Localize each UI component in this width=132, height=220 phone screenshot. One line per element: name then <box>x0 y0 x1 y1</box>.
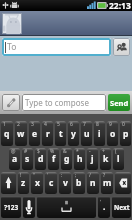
staticText: i <box>98 128 101 140</box>
button[interactable]: n <box>87 172 99 194</box>
button[interactable]: c <box>45 172 57 194</box>
staticText: 9 <box>109 121 112 128</box>
staticText: 5 <box>57 121 60 128</box>
staticText: 2 <box>17 121 20 128</box>
staticText: ' <box>47 172 49 179</box>
staticText: 22:13 <box>109 0 131 11</box>
staticText: + <box>102 148 105 155</box>
staticText: ( <box>115 148 117 155</box>
button[interactable]: d <box>35 148 46 170</box>
staticText: / <box>89 172 91 179</box>
staticText: x <box>35 177 40 189</box>
staticText: v <box>63 177 68 189</box>
button[interactable]: Contact photo <box>3 14 21 33</box>
staticText: 8 <box>96 121 99 128</box>
button[interactable]: w <box>15 121 27 146</box>
button[interactable]: v <box>59 172 71 194</box>
button[interactable]: t <box>55 121 66 146</box>
staticText: - <box>89 148 91 155</box>
staticText: t <box>59 128 63 140</box>
button[interactable]: a <box>9 148 20 170</box>
button[interactable] <box>23 196 35 218</box>
button[interactable]: h <box>74 148 85 170</box>
button[interactable]: b <box>73 172 85 194</box>
button[interactable]: j <box>87 148 98 170</box>
button[interactable]: e <box>29 121 40 146</box>
staticText: , <box>100 196 102 203</box>
button[interactable]: . <box>98 196 110 218</box>
button[interactable] <box>37 196 96 218</box>
staticText: y <box>71 128 76 140</box>
staticText: b <box>76 177 82 189</box>
staticText: . <box>103 201 106 213</box>
button[interactable]: k <box>100 148 111 170</box>
button[interactable]: y <box>68 121 79 146</box>
staticText: q <box>4 128 10 140</box>
button[interactable]: s <box>22 148 33 170</box>
staticText: d <box>38 153 44 165</box>
staticText: h <box>77 153 83 165</box>
staticText: & <box>63 148 67 155</box>
staticText: 1 <box>3 121 6 128</box>
button[interactable]: r <box>42 121 53 146</box>
staticText: k <box>103 153 109 165</box>
staticText: s <box>25 153 30 165</box>
button[interactable] <box>1 172 16 194</box>
button[interactable]: Next <box>112 196 131 218</box>
button[interactable]: z <box>18 172 29 194</box>
staticText: * <box>76 148 79 155</box>
staticText: " <box>33 172 36 179</box>
staticText: l <box>117 153 120 165</box>
staticText: To <box>7 41 17 53</box>
staticText: 3 <box>31 121 34 128</box>
staticText: a <box>12 153 18 165</box>
button[interactable]: Attach <box>2 94 20 111</box>
button[interactable]: l <box>113 148 124 170</box>
staticText: c <box>49 177 54 189</box>
staticText: $ <box>37 148 40 155</box>
staticText: ?123 <box>4 203 19 212</box>
button[interactable]: p <box>120 121 131 146</box>
button[interactable]: Send <box>108 94 130 111</box>
button[interactable]: i <box>94 121 105 146</box>
staticText: ! <box>20 172 22 179</box>
staticText: : <box>61 172 63 179</box>
staticText: w <box>17 128 25 140</box>
staticText: ; <box>75 172 77 179</box>
staticText: Send <box>110 98 129 108</box>
staticText: f <box>52 153 56 165</box>
button[interactable] <box>115 172 131 194</box>
staticText: % <box>50 148 55 155</box>
staticText: @ <box>11 148 16 155</box>
button[interactable]: x <box>31 172 43 194</box>
staticText: Next <box>114 203 130 212</box>
staticText: Type to compose <box>25 97 89 108</box>
staticText: # <box>24 148 28 155</box>
staticText: m <box>103 177 112 189</box>
staticText: g <box>64 153 70 165</box>
button[interactable]: q <box>1 121 13 146</box>
staticText: 0 <box>122 121 125 128</box>
staticText: j <box>91 153 94 165</box>
staticText: o <box>110 128 116 140</box>
staticText: n <box>90 177 96 189</box>
button[interactable]: m <box>101 172 113 194</box>
button[interactable]: f <box>48 148 59 170</box>
staticText: e <box>32 128 38 140</box>
staticText: ? <box>103 172 106 179</box>
button[interactable]: u <box>81 121 92 146</box>
staticText: p <box>123 128 129 140</box>
button[interactable]: o <box>107 121 118 146</box>
staticText: z <box>21 177 26 189</box>
staticText: r <box>46 128 50 140</box>
button[interactable]: g <box>61 148 72 170</box>
button[interactable]: Type to compose <box>22 94 106 111</box>
button[interactable]: To <box>2 38 111 56</box>
button[interactable]: Pick contact <box>113 38 130 56</box>
button[interactable]: ?123 <box>1 196 21 218</box>
staticText: 4 <box>44 121 47 128</box>
staticText: 7 <box>83 121 86 128</box>
staticText: 6 <box>70 121 73 128</box>
staticText: u <box>84 128 90 140</box>
